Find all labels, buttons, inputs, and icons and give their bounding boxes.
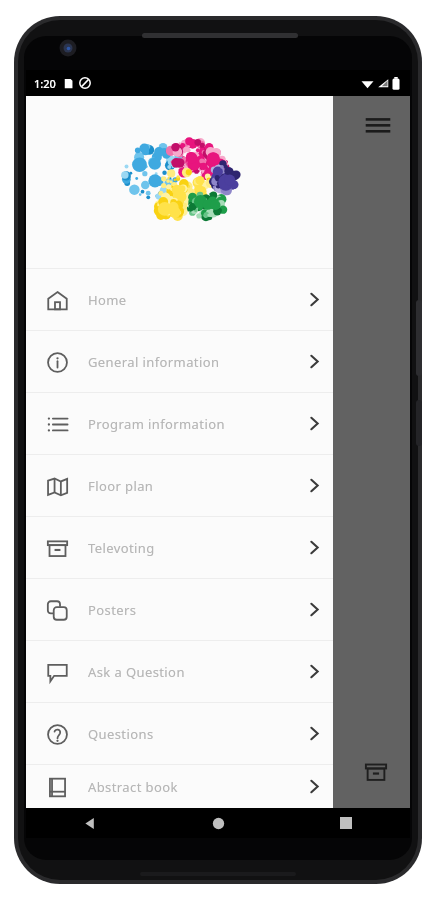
staticText: Program information — [88, 415, 225, 433]
staticText: Abstract book — [88, 778, 178, 796]
button[interactable]: Home — [26, 269, 333, 330]
button[interactable]: Abstract book — [26, 765, 333, 808]
button[interactable]: Posters — [26, 579, 333, 640]
staticText: Ask a Question — [88, 663, 185, 681]
button[interactable]: Recent apps — [282, 808, 410, 838]
button[interactable]: Televoting — [26, 517, 333, 578]
staticText: General information — [88, 353, 220, 371]
button[interactable]: Ask a Question — [26, 641, 333, 702]
button[interactable]: Program information — [26, 393, 333, 454]
button[interactable]: Back — [26, 808, 154, 838]
staticText: Televoting — [88, 539, 155, 557]
staticText: Posters — [88, 601, 137, 619]
button[interactable]: General information — [26, 331, 333, 392]
button[interactable]: Open navigation menu — [356, 104, 400, 148]
staticText: Floor plan — [88, 477, 154, 495]
button[interactable]: Home — [154, 808, 282, 838]
staticText: Questions — [88, 725, 154, 743]
staticText: 1:20 — [34, 76, 56, 91]
staticText: Home — [88, 291, 127, 309]
button[interactable]: Questions — [26, 703, 333, 764]
button[interactable]: Floor plan — [26, 455, 333, 516]
button[interactable]: Televoting — [356, 752, 396, 792]
